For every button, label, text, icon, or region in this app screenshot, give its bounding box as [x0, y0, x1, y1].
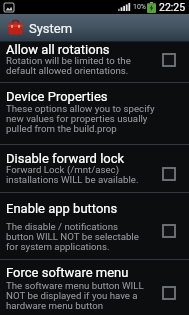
staticText: Rotation will be limited to the default … [6, 55, 131, 76]
button[interactable]: Device Properties [0, 83, 189, 144]
staticText: Force software menu [6, 265, 129, 280]
staticText: 10% [133, 3, 146, 11]
staticText: System [29, 21, 73, 36]
button[interactable]: Enable app buttons [0, 193, 189, 259]
staticText: Device Properties [6, 89, 108, 104]
staticText: The disable / notifications button WILL … [6, 221, 139, 252]
button[interactable]: Allow all rotations [0, 42, 189, 82]
button[interactable]: Force software menu [0, 260, 189, 315]
button[interactable]: Disable forward lock [0, 145, 189, 192]
staticText: 22:25 [159, 1, 186, 13]
staticText: Disable forward lock [6, 151, 125, 166]
staticText: The software menu button WILL NOT be dis… [6, 280, 144, 311]
staticText: Allow all rotations [6, 42, 110, 57]
staticText: Forward Lock (/mnt/asec) installations W… [6, 164, 139, 185]
staticText: These options allow you to specify new v… [6, 103, 155, 134]
staticText: Enable app buttons [6, 201, 118, 216]
